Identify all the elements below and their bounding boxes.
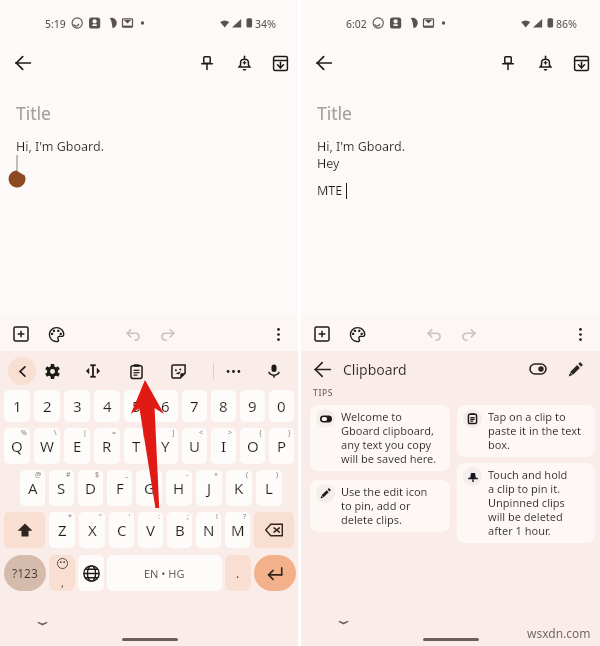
staticText: 3 <box>73 396 82 416</box>
staticText: W <box>40 436 54 456</box>
button[interactable]: Reminder <box>531 49 559 77</box>
button[interactable]: EN • HG <box>107 555 222 591</box>
button[interactable]: Toggle clipboard <box>526 357 550 381</box>
button[interactable]: Text editing <box>85 363 101 379</box>
button[interactable]: Backspace <box>254 512 294 548</box>
button[interactable]: D <box>78 470 103 506</box>
button[interactable]: Emoji <box>49 555 75 591</box>
button[interactable]: Settings <box>44 363 60 379</box>
staticText: Touch and hold a clip to pin it. Unpinne… <box>488 467 568 538</box>
button[interactable]: Pin <box>494 49 522 77</box>
button[interactable]: . <box>225 555 251 591</box>
staticText: ] <box>172 428 175 438</box>
button[interactable]: More <box>225 363 241 379</box>
button[interactable]: Z <box>49 512 75 548</box>
button[interactable]: Edit clips <box>562 356 588 382</box>
button[interactable]: A <box>20 470 45 506</box>
staticText: ? <box>243 512 247 522</box>
button[interactable]: K <box>226 470 252 506</box>
button[interactable]: O <box>240 428 265 464</box>
button[interactable]: Use the edit icon to pin, add or delete … <box>310 480 450 532</box>
staticText: 7 <box>190 396 199 416</box>
staticText: G <box>144 478 155 498</box>
button[interactable]: Q <box>4 428 30 464</box>
button[interactable]: Redo <box>155 321 181 347</box>
button[interactable]: More options <box>265 321 291 347</box>
button[interactable]: E <box>64 428 90 464</box>
button[interactable]: C <box>109 512 134 548</box>
button[interactable]: 5 <box>124 390 149 422</box>
staticText: 2 <box>43 396 52 416</box>
staticText: Y <box>161 436 170 456</box>
button[interactable]: G <box>136 470 162 506</box>
button[interactable]: R <box>94 428 120 464</box>
button[interactable]: 2 <box>34 390 60 422</box>
button[interactable]: W <box>34 428 60 464</box>
button[interactable]: Reminder <box>230 49 258 77</box>
button[interactable]: Add <box>8 321 34 347</box>
button[interactable]: N <box>196 512 221 548</box>
button[interactable]: Archive <box>567 49 595 77</box>
staticText: 5:19 <box>45 17 66 31</box>
button[interactable]: Shift <box>4 512 45 548</box>
button[interactable]: L <box>256 470 282 506</box>
staticText: | <box>83 428 87 438</box>
button[interactable]: Back <box>309 356 335 382</box>
button[interactable]: S <box>49 470 74 506</box>
staticText: 8 <box>219 396 228 416</box>
button[interactable]: Welcome to Gboard clipboard, any text yo… <box>310 405 450 471</box>
button[interactable]: Expand toolbar <box>8 357 36 385</box>
button[interactable]: Hide keyboard <box>31 612 53 634</box>
staticText: { <box>259 428 262 438</box>
button[interactable]: 7 <box>182 390 207 422</box>
button[interactable]: Tap on a clip to paste it in the text bo… <box>457 405 595 457</box>
button[interactable]: X <box>79 512 105 548</box>
button[interactable]: 9 <box>240 390 265 422</box>
staticText: 1 <box>13 396 22 416</box>
button[interactable]: Voice input <box>266 363 282 379</box>
button[interactable]: Back <box>309 48 339 78</box>
button[interactable]: Redo <box>456 321 482 347</box>
button[interactable]: 8 <box>211 390 236 422</box>
button[interactable]: Add <box>309 321 335 347</box>
button[interactable]: Archive <box>266 49 294 77</box>
button[interactable]: M <box>225 512 250 548</box>
button[interactable]: More options <box>567 321 593 347</box>
button[interactable]: Undo <box>420 321 446 347</box>
button[interactable]: Switch language <box>78 555 104 591</box>
button[interactable]: ?123 <box>4 555 46 591</box>
staticText: " <box>99 512 102 522</box>
button[interactable]: H <box>166 470 192 506</box>
staticText: * <box>68 512 72 522</box>
button[interactable]: Clipboard <box>128 363 144 379</box>
staticText: Z <box>58 520 67 540</box>
staticText: X <box>88 520 97 540</box>
button[interactable]: 3 <box>64 390 90 422</box>
button[interactable]: B <box>167 512 192 548</box>
button[interactable]: Change colour <box>43 321 69 347</box>
button[interactable]: Touch and hold a clip to pin it. Unpinne… <box>457 463 595 543</box>
button[interactable]: 4 <box>94 390 120 422</box>
staticText: 5 <box>132 396 141 416</box>
staticText: Hi, I'm Gboard. <box>317 138 406 155</box>
staticText: ' <box>129 512 131 522</box>
button[interactable]: Back <box>8 48 38 78</box>
button[interactable]: U <box>182 428 207 464</box>
button[interactable]: 1 <box>4 390 30 422</box>
button[interactable]: Y <box>153 428 178 464</box>
button[interactable]: Pin <box>193 49 221 77</box>
button[interactable]: V <box>138 512 163 548</box>
button[interactable]: Undo <box>119 321 145 347</box>
button[interactable]: I <box>211 428 236 464</box>
button[interactable]: Hide keyboard <box>332 611 354 633</box>
button[interactable]: J <box>196 470 222 506</box>
button[interactable]: F <box>107 470 132 506</box>
button[interactable]: Change colour <box>344 321 370 347</box>
button[interactable]: Enter <box>254 555 296 591</box>
button[interactable]: Stickers <box>170 363 186 379</box>
button[interactable]: 6 <box>153 390 178 422</box>
staticText: MTE <box>317 182 343 199</box>
button[interactable]: P <box>269 428 294 464</box>
button[interactable]: T <box>124 428 149 464</box>
button[interactable]: 0 <box>269 390 294 422</box>
